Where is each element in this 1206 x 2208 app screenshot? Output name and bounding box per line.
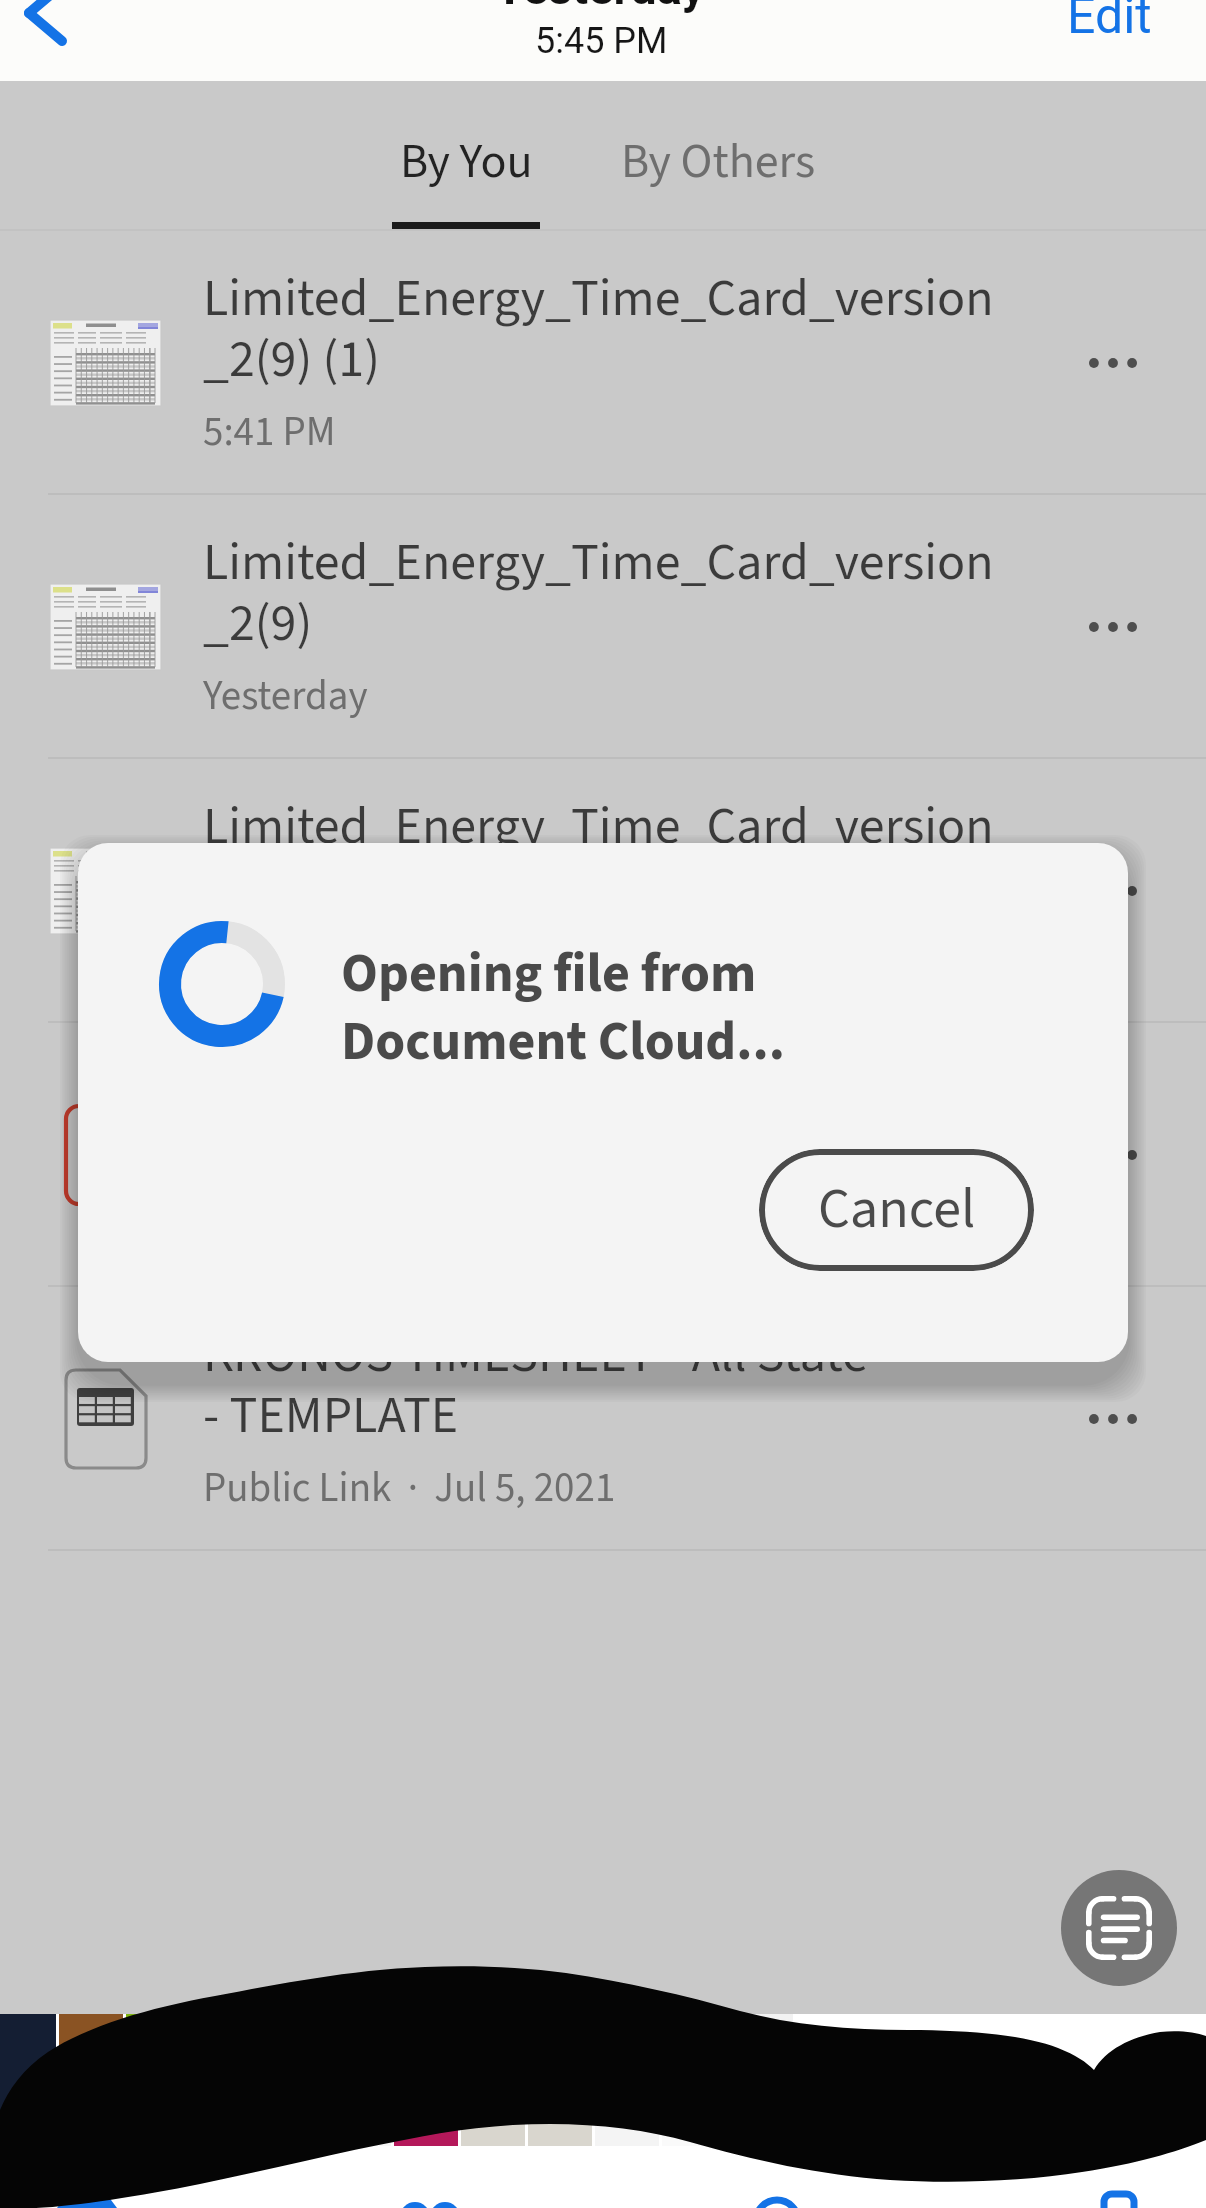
staticText: Yesterday [203, 931, 368, 989]
button[interactable]: By Others [592, 81, 844, 231]
staticText: 5:41 PM [203, 403, 336, 461]
button[interactable] [461, 2014, 525, 2146]
button[interactable]: Home [7, 2138, 167, 2208]
staticText: Limited_Energy_Time_Card_version _2(9) [203, 799, 994, 921]
staticText: By Others [621, 128, 816, 196]
staticText: Public Link · Jul 5, 2021 [203, 1459, 616, 1517]
button[interactable] [126, 2014, 190, 2146]
button[interactable]: Cancel [759, 1149, 1034, 1271]
button[interactable]: More options [1043, 231, 1183, 495]
button[interactable]: Kronos_timesheet_Feb_2021 [0, 1023, 1206, 1287]
button[interactable] [59, 2014, 123, 2146]
button[interactable]: More options [1043, 495, 1183, 759]
button[interactable]: More options [1043, 759, 1183, 1023]
button[interactable] [327, 2014, 391, 2146]
staticText: Cancel [818, 1170, 976, 1250]
button[interactable]: Tools [1039, 2138, 1199, 2208]
button[interactable] [662, 2014, 726, 2146]
button[interactable]: Back [0, 0, 120, 33]
staticText: Yesterday [203, 667, 368, 725]
staticText: Limited_Energy_Time_Card_version _2(9) (… [203, 271, 994, 393]
button[interactable]: More options [1043, 1287, 1183, 1551]
button[interactable]: More options [1043, 1023, 1183, 1287]
button[interactable]: Files [350, 2138, 510, 2208]
button[interactable]: Limited_Energy_Time_Card_version _2(9) [0, 759, 1206, 1023]
button[interactable] [528, 2014, 592, 2146]
button[interactable] [729, 2014, 793, 2146]
staticText: Edit [1067, 0, 1152, 46]
staticText: 5:45 PM [535, 20, 668, 62]
button[interactable] [0, 2014, 56, 2146]
button[interactable]: Scan document [1061, 1870, 1177, 1986]
button[interactable] [394, 2014, 458, 2146]
button[interactable] [595, 2014, 659, 2146]
staticText: Limited_Energy_Time_Card_version _2(9) [203, 535, 994, 657]
button[interactable]: KRONOS TIMESHEET - All State - TEMPLATE [0, 1287, 1206, 1551]
button[interactable]: Limited_Energy_Time_Card_version _2(9) (… [0, 231, 1206, 495]
staticText: Yesterday [495, 0, 706, 15]
staticText: Opening file from Document Cloud... [341, 942, 785, 1078]
button[interactable]: Shared [697, 2138, 857, 2208]
button[interactable]: Edit [1037, 0, 1187, 21]
staticText: By You [400, 128, 533, 196]
staticText: KRONOS TIMESHEET - All State - TEMPLATE [203, 1327, 868, 1449]
button[interactable]: By You [368, 81, 564, 231]
button[interactable]: Limited_Energy_Time_Card_version _2(9) [0, 495, 1206, 759]
